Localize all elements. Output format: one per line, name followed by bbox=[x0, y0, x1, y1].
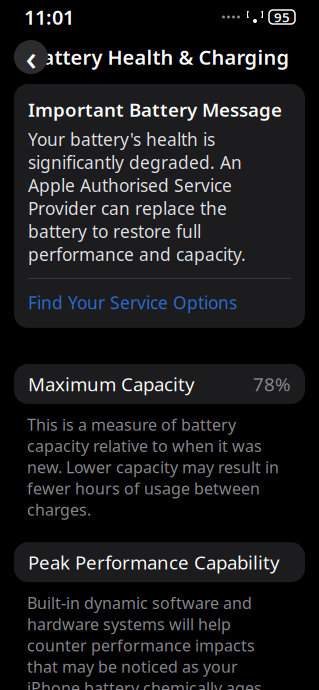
staticText: 11:01 bbox=[24, 4, 74, 30]
button[interactable]: Peak Performance Capability bbox=[14, 542, 305, 582]
staticText: 78% bbox=[253, 371, 291, 396]
staticText: 95 bbox=[274, 8, 290, 26]
button[interactable]: Maximum Capacity bbox=[14, 364, 305, 404]
staticText: Your battery's health is significantly d… bbox=[28, 128, 246, 266]
staticText: Built-in dynamic software and hardware s… bbox=[27, 592, 266, 690]
staticText: Important Battery Message bbox=[28, 97, 282, 122]
staticText: Peak Performance Capability bbox=[28, 550, 280, 575]
staticText: This is a measure of battery capacity re… bbox=[27, 414, 279, 520]
staticText: Find Your Service Options bbox=[28, 291, 237, 314]
button[interactable]: Back bbox=[14, 40, 48, 74]
button[interactable]: Find Your Service Options bbox=[14, 279, 305, 328]
staticText: Battery Health & Charging bbox=[29, 44, 289, 70]
staticText: Maximum Capacity bbox=[28, 371, 195, 396]
staticText: ‹ bbox=[25, 34, 36, 80]
